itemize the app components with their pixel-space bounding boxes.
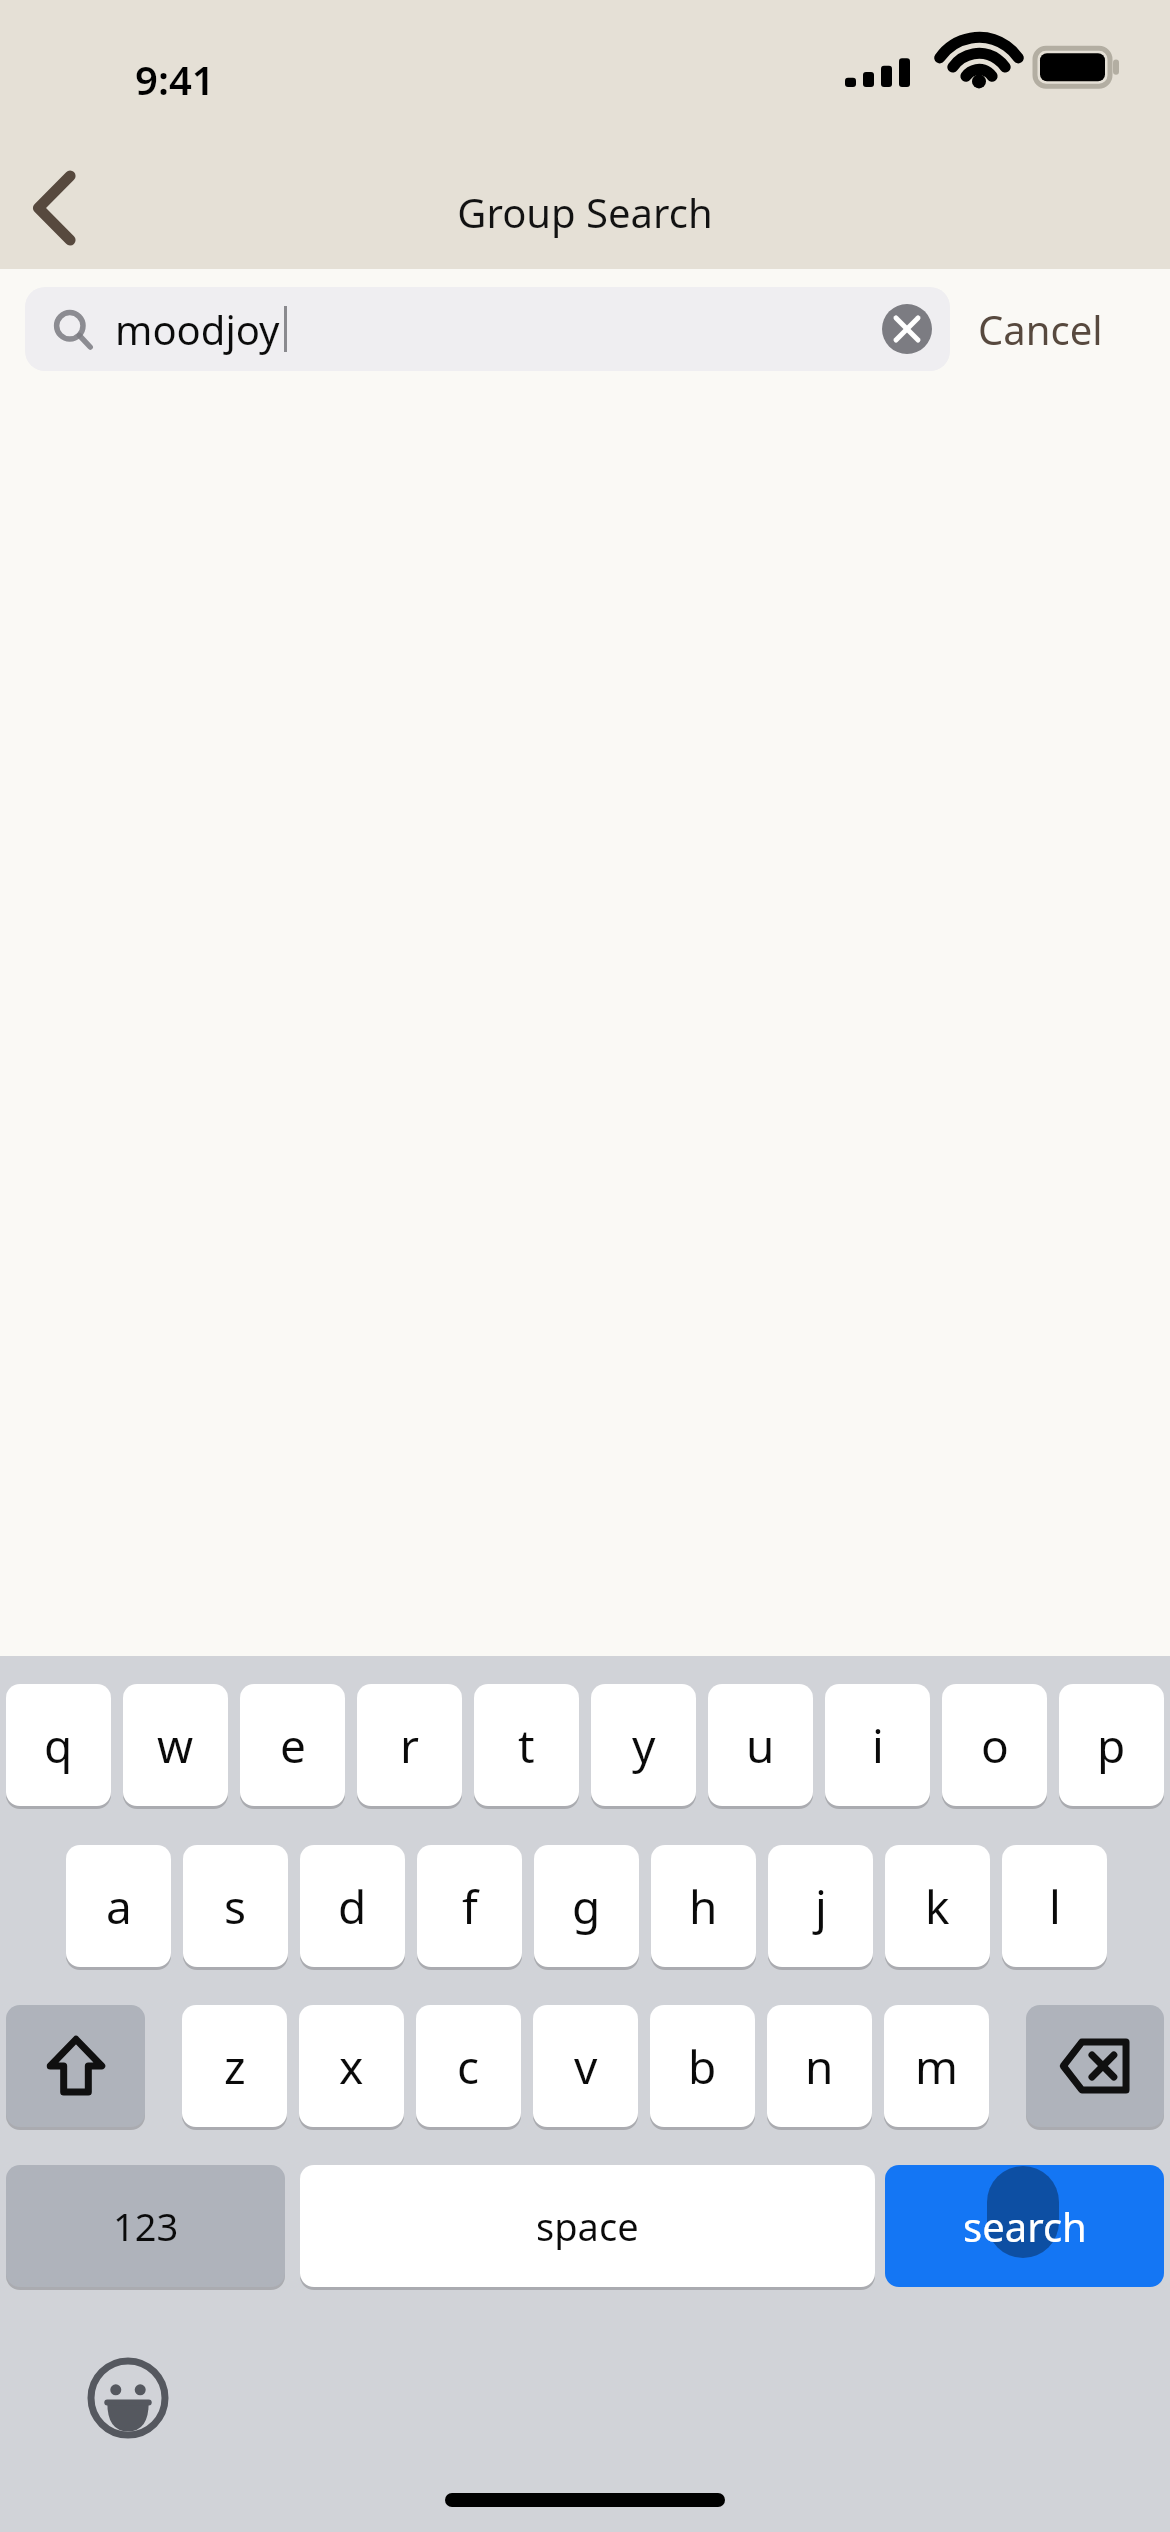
staticText: z	[224, 2035, 246, 2098]
staticText: t	[518, 1714, 535, 1777]
button[interactable]: j	[768, 1845, 873, 1967]
button[interactable]: b	[650, 2005, 755, 2127]
staticText: y	[632, 1714, 656, 1777]
button[interactable]: o	[942, 1684, 1047, 1806]
staticText: w	[157, 1714, 194, 1777]
button[interactable]: v	[533, 2005, 638, 2127]
staticText: i	[872, 1714, 884, 1777]
staticText: space	[536, 2200, 639, 2252]
staticText: k	[925, 1875, 950, 1938]
button[interactable]: m	[884, 2005, 989, 2127]
staticText: f	[462, 1875, 478, 1938]
button[interactable]: Clear text	[872, 294, 942, 364]
button[interactable]: Backspace	[1026, 2005, 1164, 2127]
staticText: j	[815, 1875, 827, 1938]
button[interactable]: 123	[6, 2165, 285, 2287]
button[interactable]: Emoji keyboard	[68, 2338, 188, 2458]
button[interactable]: h	[651, 1845, 756, 1967]
staticText: r	[400, 1714, 419, 1777]
button[interactable]: g	[534, 1845, 639, 1967]
button[interactable]: f	[417, 1845, 522, 1967]
button[interactable]: z	[182, 2005, 287, 2127]
button[interactable]: d	[300, 1845, 405, 1967]
staticText: m	[915, 2035, 959, 2098]
staticText: l	[1049, 1875, 1061, 1938]
button[interactable]: e	[240, 1684, 345, 1806]
staticText: moodjoy	[115, 302, 280, 356]
button[interactable]: i	[825, 1684, 930, 1806]
button[interactable]: l	[1002, 1845, 1107, 1967]
staticText: s	[224, 1875, 247, 1938]
button[interactable]: k	[885, 1845, 990, 1967]
staticText: v	[574, 2035, 598, 2098]
staticText: q	[44, 1714, 73, 1777]
button[interactable]: t	[474, 1684, 579, 1806]
button[interactable]: moodjoy	[25, 287, 950, 371]
staticText: 123	[113, 2200, 179, 2252]
staticText: h	[689, 1875, 718, 1938]
staticText: o	[981, 1714, 1009, 1777]
staticText: search	[963, 2199, 1087, 2253]
button[interactable]: Shift	[6, 2005, 145, 2127]
button[interactable]: c	[416, 2005, 521, 2127]
button[interactable]: n	[767, 2005, 872, 2127]
button[interactable]: s	[183, 1845, 288, 1967]
button[interactable]: u	[708, 1684, 813, 1806]
staticText: e	[280, 1714, 306, 1777]
staticText: u	[746, 1714, 775, 1777]
staticText: a	[106, 1875, 132, 1938]
staticText: Cancel	[978, 302, 1103, 356]
button[interactable]: q	[6, 1684, 111, 1806]
button[interactable]: y	[591, 1684, 696, 1806]
staticText: b	[688, 2035, 717, 2098]
button[interactable]: w	[123, 1684, 228, 1806]
staticText: x	[339, 2035, 364, 2098]
button[interactable]: Back	[8, 160, 104, 256]
staticText: g	[572, 1875, 601, 1938]
button[interactable]: p	[1059, 1684, 1164, 1806]
staticText: d	[338, 1875, 367, 1938]
button[interactable]: space	[300, 2165, 875, 2287]
staticText: p	[1097, 1714, 1126, 1777]
staticText: c	[457, 2035, 480, 2098]
button[interactable]: a	[66, 1845, 171, 1967]
button[interactable]: search	[885, 2165, 1164, 2287]
staticText: 9:41	[135, 52, 215, 106]
staticText: Group Search	[0, 185, 1170, 239]
button[interactable]: Cancel	[950, 269, 1131, 389]
button[interactable]: r	[357, 1684, 462, 1806]
staticText: n	[805, 2035, 834, 2098]
button[interactable]: x	[299, 2005, 404, 2127]
